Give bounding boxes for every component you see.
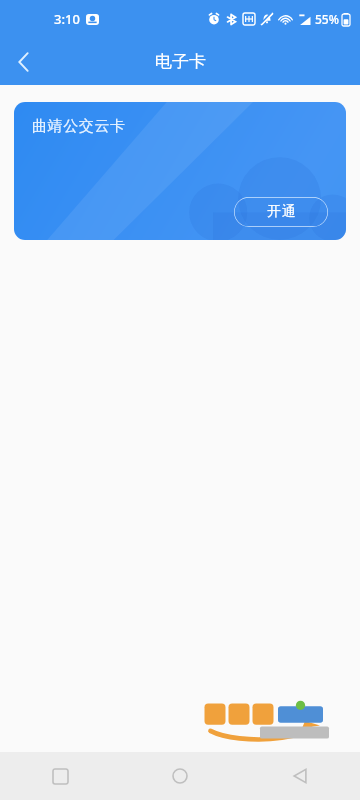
- button[interactable]: 曲靖公交云卡: [14, 102, 346, 240]
- staticText: 曲靖公交云卡: [32, 117, 126, 136]
- button[interactable]: Recent apps: [0, 752, 120, 800]
- button[interactable]: 开通: [234, 197, 328, 227]
- staticText: 3:10: [54, 10, 80, 28]
- staticText: 开通: [267, 203, 296, 221]
- button[interactable]: Back: [240, 752, 360, 800]
- staticText: 55%: [315, 11, 339, 27]
- button[interactable]: Back: [0, 39, 46, 85]
- button[interactable]: Home: [120, 752, 240, 800]
- staticText: 电子卡: [155, 51, 206, 72]
